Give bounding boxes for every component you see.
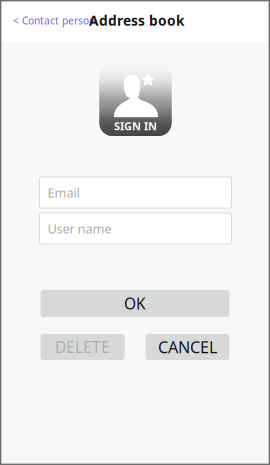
button[interactable]: < Contact person bbox=[13, 7, 99, 33]
staticText: Email bbox=[47, 184, 79, 201]
button[interactable]: DELETE bbox=[40, 334, 124, 360]
button[interactable]: OK bbox=[40, 290, 229, 317]
button[interactable]: CANCEL bbox=[145, 334, 229, 360]
staticText: Address book bbox=[89, 11, 185, 30]
staticText: CANCEL bbox=[158, 336, 217, 358]
staticText: User name bbox=[47, 220, 111, 237]
staticText: DELETE bbox=[55, 336, 110, 358]
staticText: < Contact person bbox=[13, 14, 95, 27]
staticText: OK bbox=[124, 293, 146, 314]
staticText: SIGN IN bbox=[114, 119, 157, 133]
